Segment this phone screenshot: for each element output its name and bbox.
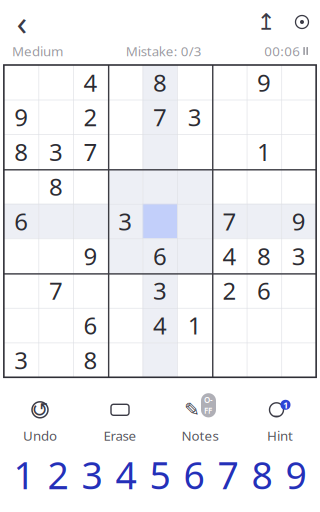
button[interactable]: 3 — [75, 452, 109, 498]
staticText: Mistake: 0/3 — [126, 42, 202, 60]
staticText: 7 — [217, 450, 238, 499]
staticText: Erase — [103, 427, 136, 444]
button[interactable]: 8 — [245, 452, 279, 498]
staticText: Hint — [267, 427, 293, 444]
staticText: 4 — [153, 309, 167, 341]
staticText: 8 — [49, 170, 63, 202]
staticText: 3 — [292, 240, 306, 272]
staticText: ‹ — [16, 0, 27, 45]
staticText: 3 — [14, 344, 28, 376]
button[interactable]: Back — [0, 4, 44, 40]
staticText: OFF — [204, 395, 213, 416]
staticText: 1 — [13, 450, 34, 499]
staticText: 9 — [285, 450, 306, 499]
staticText: 3 — [81, 450, 102, 499]
button[interactable]: ✎ — [160, 396, 240, 446]
button[interactable]: 1 — [7, 452, 41, 498]
staticText: 8 — [153, 66, 167, 98]
staticText: 3 — [188, 101, 202, 133]
staticText: 4 — [222, 240, 236, 272]
staticText: 8 — [84, 344, 98, 376]
staticText: 6 — [257, 275, 271, 306]
staticText: 7 — [49, 275, 63, 306]
staticText: 9 — [14, 101, 28, 133]
staticText: 2 — [222, 275, 236, 306]
staticText: ↥ — [256, 9, 275, 35]
staticText: 9 — [292, 205, 306, 237]
staticText: 1 — [283, 399, 288, 411]
staticText: 7 — [222, 205, 236, 237]
staticText: 8 — [251, 450, 272, 499]
staticText: 1 — [257, 136, 271, 168]
button[interactable]: 2 — [41, 452, 75, 498]
staticText: Undo — [23, 427, 57, 444]
button[interactable]: 1 — [240, 396, 320, 446]
staticText: 8 — [257, 240, 271, 272]
staticText: 6 — [153, 240, 167, 272]
staticText: 00:06 — [264, 42, 300, 60]
button[interactable]: ↺ — [0, 396, 80, 446]
staticText: 2 — [84, 101, 98, 133]
button[interactable]: Settings — [284, 4, 320, 40]
button[interactable]: 9 — [279, 452, 313, 498]
button[interactable]: Erase — [80, 396, 160, 446]
staticText: 7 — [84, 136, 98, 168]
staticText: 8 — [14, 136, 28, 168]
staticText: 3 — [153, 275, 167, 306]
staticText: 4 — [115, 450, 136, 499]
staticText: 1 — [188, 309, 202, 341]
staticText: 5 — [149, 450, 170, 499]
staticText: ↺ — [31, 398, 48, 421]
button[interactable]: 5 — [143, 452, 177, 498]
staticText: Medium — [12, 42, 63, 60]
staticText: 3 — [118, 205, 132, 237]
staticText: 6 — [183, 450, 204, 499]
staticText: 6 — [84, 309, 98, 341]
staticText: 3 — [49, 136, 63, 168]
staticText: ✎ — [184, 399, 200, 420]
staticText: 7 — [153, 101, 167, 133]
button[interactable]: 6 — [177, 452, 211, 498]
staticText: 4 — [84, 66, 98, 98]
button[interactable]: 4 — [109, 452, 143, 498]
staticText: 9 — [84, 240, 98, 272]
staticText: 2 — [47, 450, 68, 499]
staticText: 6 — [14, 205, 28, 237]
button[interactable]: 7 — [211, 452, 245, 498]
staticText: 9 — [257, 66, 271, 98]
staticText: Notes — [181, 427, 218, 444]
button[interactable]: Share — [248, 4, 284, 40]
